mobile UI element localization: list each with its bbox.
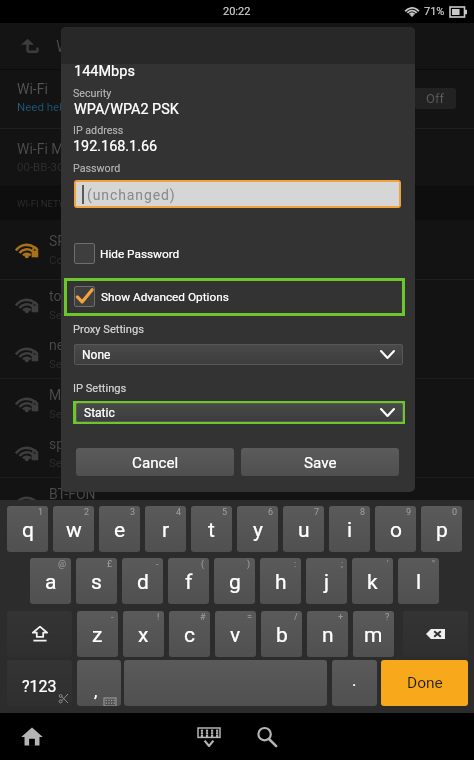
button[interactable]: i [329, 506, 370, 552]
button[interactable]: f [168, 558, 209, 604]
button[interactable]: Save [241, 448, 399, 476]
button[interactable]: BT-FON [0, 478, 474, 528]
button[interactable]: x [123, 611, 164, 657]
staticText: (unchanged) [87, 187, 176, 203]
staticText: £ [107, 559, 113, 570]
staticText: 20:22 [223, 5, 251, 18]
staticText: 1 [38, 507, 44, 518]
button[interactable]: Static [76, 403, 403, 422]
staticText: n [322, 623, 334, 648]
button[interactable]: Off [414, 88, 456, 109]
staticText: Secured [49, 506, 91, 519]
button[interactable]: t [191, 506, 232, 552]
button[interactable]: r [145, 506, 186, 552]
button[interactable]: Space [124, 660, 327, 706]
button[interactable]: s [76, 558, 117, 604]
button[interactable]: c [169, 611, 210, 657]
staticText: 144Mbps [74, 63, 135, 80]
button[interactable]: b [261, 611, 302, 657]
button[interactable]: w [53, 506, 94, 552]
staticText: h [275, 570, 287, 595]
button[interactable]: d [122, 558, 163, 604]
button[interactable]: e [99, 506, 140, 552]
button[interactable]: a [30, 558, 71, 604]
button[interactable]: Backspace [403, 611, 468, 657]
staticText: Secured [49, 407, 91, 420]
staticText: 4 [176, 507, 182, 518]
button[interactable]: Hide Password [67, 238, 405, 269]
button[interactable]: Hide keyboard [187, 713, 231, 760]
button[interactable]: n [307, 611, 348, 657]
button[interactable]: m [353, 611, 394, 657]
staticText: IP Settings [73, 382, 127, 395]
button[interactable]: . [332, 660, 377, 706]
staticText: 9 [406, 507, 412, 518]
staticText: None [82, 348, 111, 362]
button[interactable]: j [306, 558, 347, 604]
button[interactable]: Wi-Fi MAC address [0, 129, 474, 186]
button[interactable]: , [77, 660, 121, 706]
staticText: 7 [314, 507, 320, 518]
staticText: Show Advanced Options [101, 290, 229, 304]
staticText: Secured [49, 357, 91, 370]
staticText: c [184, 623, 195, 648]
staticText: k [367, 570, 378, 595]
button[interactable]: g [214, 558, 255, 604]
staticText: q [22, 518, 34, 543]
button[interactable]: v [215, 611, 256, 657]
button[interactable]: MyHomeAP [0, 379, 474, 429]
staticText: SPcomms [49, 233, 114, 249]
staticText: - [156, 559, 159, 570]
button[interactable]: q [7, 506, 48, 552]
staticText: d [137, 570, 149, 595]
button[interactable]: netlink24 [0, 329, 474, 379]
button[interactable]: speedy_5G [0, 428, 474, 478]
button[interactable]: u [283, 506, 324, 552]
staticText: u [298, 518, 310, 543]
staticText: 2 [84, 507, 90, 518]
button[interactable]: Done [381, 660, 468, 706]
staticText: Off [426, 91, 444, 106]
staticText: 3 [130, 507, 136, 518]
button[interactable]: k [352, 558, 393, 604]
button[interactable]: Home [10, 713, 54, 760]
staticText: j [324, 570, 330, 595]
button[interactable]: y [237, 506, 278, 552]
staticText: / [294, 612, 298, 623]
staticText: r [162, 518, 170, 543]
button[interactable]: Cancel [76, 448, 234, 476]
staticText: " [432, 559, 435, 570]
staticText: netlink24 [49, 337, 107, 353]
staticText: : [294, 559, 297, 570]
button[interactable]: l [398, 558, 439, 604]
button[interactable]: ?123 [7, 660, 72, 706]
button[interactable]: Show Advanced Options [64, 278, 405, 316]
button[interactable]: (unchanged) [76, 182, 399, 206]
button[interactable]: SPcomms [0, 220, 474, 280]
button[interactable]: Navigate up [13, 30, 45, 62]
staticText: + [338, 612, 344, 623]
staticText: 192.168.1.66 [73, 138, 158, 155]
staticText: b [276, 623, 288, 648]
button[interactable]: Wi-Fi [0, 70, 474, 128]
staticText: p [436, 518, 448, 543]
staticText: Need help? [17, 100, 74, 113]
staticText: 6 [268, 507, 274, 518]
button[interactable]: h [260, 558, 301, 604]
staticText: Done [407, 674, 443, 692]
button[interactable]: z [77, 611, 118, 657]
staticText: # [200, 612, 206, 623]
button[interactable]: Search [245, 713, 289, 760]
button[interactable]: p [421, 506, 462, 552]
button[interactable]: Shift [7, 611, 72, 657]
button[interactable]: tomatodo [0, 280, 474, 330]
staticText: a [45, 570, 57, 595]
staticText: x [138, 623, 149, 648]
staticText: speedy_5G [49, 436, 118, 452]
button[interactable]: None [74, 344, 403, 365]
staticText: , [94, 681, 98, 701]
staticText: Wi-Fi [56, 37, 92, 56]
staticText: Password [73, 162, 121, 175]
button[interactable]: o [375, 506, 416, 552]
staticText: Save [304, 454, 337, 472]
